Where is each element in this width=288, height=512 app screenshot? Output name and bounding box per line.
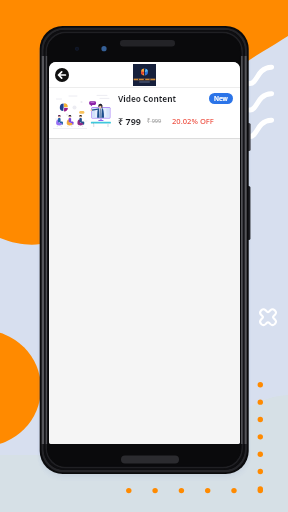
staticText: Video Content	[118, 93, 177, 104]
button[interactable]: New	[209, 93, 233, 104]
staticText: 20.02% OFF	[172, 116, 214, 126]
staticText: ₹ 999	[147, 117, 162, 125]
button[interactable]: Logo	[133, 64, 156, 86]
staticText: ₹ 799	[118, 115, 141, 127]
button[interactable]: Video Content	[49, 88, 240, 138]
button[interactable]: Back	[55, 68, 69, 82]
staticText: New	[214, 94, 228, 103]
